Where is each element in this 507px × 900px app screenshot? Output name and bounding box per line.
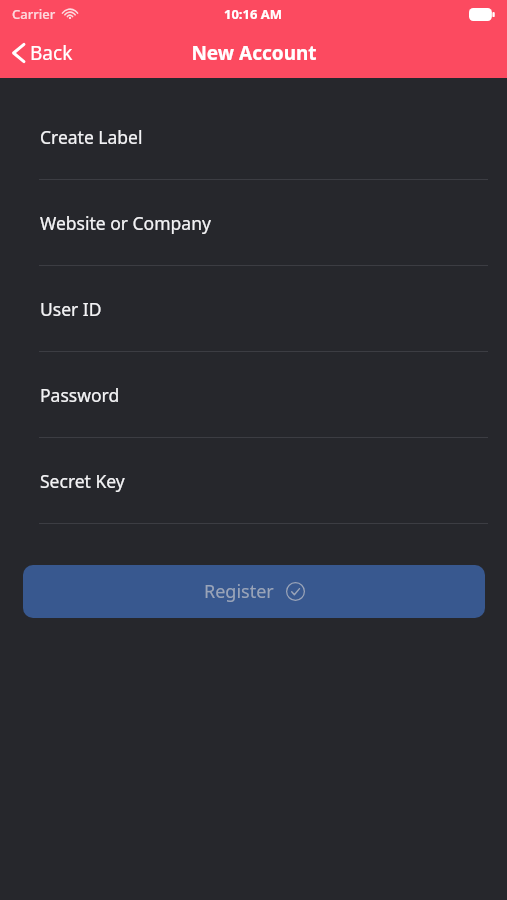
other: Confirm xyxy=(286,582,305,601)
staticText: User ID xyxy=(40,297,102,321)
staticText: Carrier xyxy=(12,5,56,23)
button[interactable]: Website or Company xyxy=(0,180,507,266)
button[interactable]: Back xyxy=(0,32,85,74)
button[interactable]: Register xyxy=(23,565,485,618)
staticText: New Account xyxy=(191,40,317,66)
staticText: Secret Key xyxy=(40,469,125,493)
staticText: 10:16 AM xyxy=(224,5,283,23)
button[interactable]: User ID xyxy=(0,266,507,352)
staticText: Register xyxy=(204,579,274,604)
button[interactable]: Password xyxy=(0,352,507,438)
staticText: Create Label xyxy=(40,125,143,149)
staticText: Website or Company xyxy=(40,211,211,235)
button[interactable]: Secret Key xyxy=(0,438,507,524)
staticText: Back xyxy=(30,40,73,66)
button[interactable]: Create Label xyxy=(0,94,507,180)
staticText: Password xyxy=(40,383,120,407)
